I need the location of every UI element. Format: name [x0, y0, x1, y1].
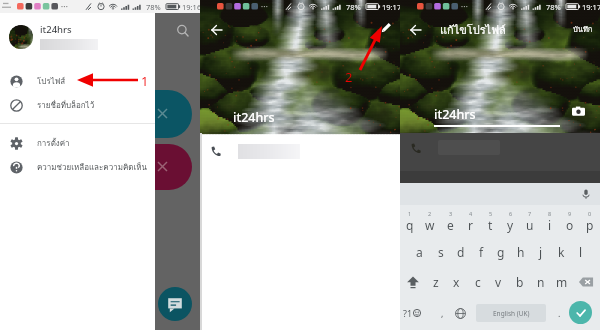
- staticText: t: [488, 217, 493, 233]
- button[interactable]: บันทึก: [573, 23, 593, 35]
- staticText: แก้ไขโปรไฟล์: [440, 21, 506, 38]
- staticText: โปรไฟส์: [37, 75, 66, 88]
- button[interactable]: Change photo: [572, 105, 585, 118]
- button[interactable]: Search: [176, 24, 190, 38]
- button[interactable]: New message: [158, 287, 192, 321]
- button[interactable]: Backspace: [572, 267, 600, 297]
- staticText: h: [517, 244, 525, 260]
- button[interactable]: k: [551, 237, 571, 267]
- button[interactable]: Voice input: [580, 188, 592, 200]
- staticText: 78%: [546, 2, 561, 12]
- button[interactable]: 4: [460, 205, 480, 237]
- button[interactable]: j: [531, 237, 551, 267]
- staticText: 1: [408, 210, 412, 217]
- staticText: x: [453, 274, 460, 290]
- button[interactable]: [128, 90, 192, 138]
- staticText: i: [548, 217, 552, 233]
- staticText: f: [479, 244, 484, 260]
- button[interactable]: l: [571, 237, 591, 267]
- staticText: k: [558, 244, 565, 260]
- button[interactable]: v: [488, 267, 509, 297]
- button[interactable]: s: [430, 237, 451, 267]
- button[interactable]: 6: [500, 205, 520, 237]
- button[interactable]: h: [511, 237, 531, 267]
- button[interactable]: ความช่วยเหลือและความคิดเห็น: [0, 155, 155, 179]
- staticText: n: [537, 274, 545, 290]
- button[interactable]: n: [530, 267, 551, 297]
- button[interactable]: Done: [569, 301, 592, 324]
- button[interactable]: English (UK): [476, 304, 546, 322]
- button[interactable]: รายชื่อที่บล็อกไว้: [0, 93, 155, 117]
- staticText: 0: [588, 210, 592, 217]
- staticText: การตั้งค่า: [37, 137, 70, 150]
- button[interactable]: 8: [540, 205, 560, 237]
- staticText: 19:16: [182, 2, 202, 12]
- button[interactable]: Back: [210, 23, 224, 37]
- staticText: 4: [469, 210, 473, 217]
- staticText: it24hrs: [434, 106, 476, 123]
- staticText: English (UK): [493, 309, 530, 318]
- button[interactable]: m: [551, 267, 572, 297]
- staticText: a: [416, 244, 423, 260]
- staticText: v: [495, 274, 502, 290]
- button[interactable]: โปรไฟส์: [0, 69, 155, 93]
- staticText: c: [475, 274, 481, 290]
- staticText: j: [539, 244, 543, 260]
- staticText: d: [457, 244, 465, 260]
- staticText: s: [438, 244, 444, 260]
- button[interactable]: f: [471, 237, 491, 267]
- staticText: ความช่วยเหลือและความคิดเห็น: [37, 161, 147, 174]
- button[interactable]: Shift: [400, 267, 426, 297]
- button[interactable]: [200, 140, 400, 162]
- staticText: 78%: [146, 2, 161, 12]
- button[interactable]: Edit: [378, 20, 394, 36]
- button[interactable]: 5: [480, 205, 500, 237]
- button[interactable]: g: [491, 237, 511, 267]
- button[interactable]: [410, 133, 600, 162]
- staticText: 9: [568, 210, 572, 217]
- staticText: 19:17: [582, 2, 600, 12]
- button[interactable]: Language: [451, 297, 469, 329]
- staticText: 8: [548, 210, 552, 217]
- button[interactable]: ,: [434, 297, 450, 329]
- staticText: e: [447, 217, 454, 233]
- staticText: b: [516, 274, 524, 290]
- button[interactable]: 1: [400, 205, 420, 237]
- staticText: p: [586, 217, 594, 233]
- staticText: it24hrs: [233, 109, 275, 126]
- staticText: 19:17: [382, 2, 402, 12]
- staticText: 2: [428, 210, 432, 217]
- staticText: 2: [345, 68, 353, 86]
- button[interactable]: b: [509, 267, 530, 297]
- staticText: z: [433, 274, 439, 290]
- staticText: m: [556, 274, 568, 290]
- staticText: 5: [489, 210, 493, 217]
- staticText: 1: [141, 72, 149, 90]
- button[interactable]: d: [451, 237, 471, 267]
- button[interactable]: c: [467, 267, 488, 297]
- button[interactable]: [128, 144, 192, 190]
- button[interactable]: 2: [420, 205, 440, 237]
- staticText: it24hrs: [40, 23, 72, 36]
- staticText: 3: [449, 210, 453, 217]
- staticText: .: [558, 307, 561, 319]
- staticText: y: [507, 217, 514, 233]
- button[interactable]: Back: [409, 23, 423, 37]
- button[interactable]: 7: [520, 205, 540, 237]
- staticText: บันทึก: [573, 23, 593, 35]
- button[interactable]: ?1: [403, 297, 429, 329]
- button[interactable]: 0: [580, 205, 600, 237]
- button[interactable]: 9: [560, 205, 580, 237]
- staticText: 7: [528, 210, 532, 217]
- button[interactable]: x: [446, 267, 467, 297]
- button[interactable]: z: [426, 267, 446, 297]
- staticText: 6: [509, 210, 513, 217]
- button[interactable]: การตั้งค่า: [0, 131, 155, 155]
- button[interactable]: 3: [440, 205, 460, 237]
- staticText: r: [468, 217, 473, 233]
- staticText: l: [579, 244, 583, 260]
- button[interactable]: a: [409, 237, 430, 267]
- staticText: w: [425, 217, 435, 233]
- staticText: รายชื่อที่บล็อกไว้: [37, 99, 95, 112]
- button[interactable]: .: [552, 297, 566, 329]
